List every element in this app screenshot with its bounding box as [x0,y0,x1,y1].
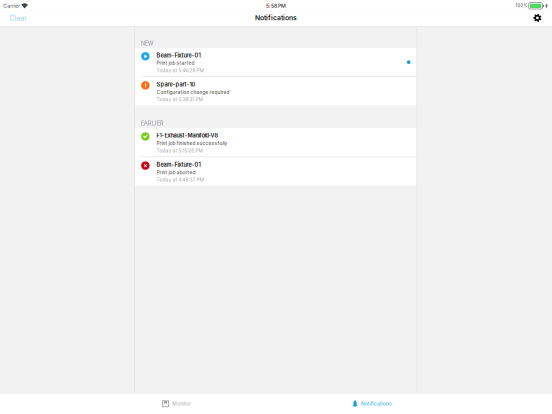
button[interactable]: Clear [0,12,36,26]
staticText: Spare-part-10 [156,81,195,88]
staticText: Beam-Fixture-01 [156,52,200,59]
staticText: Carrier [3,3,20,9]
staticText: Today at 5:46:28 PM [156,68,203,73]
staticText: Today at 5:38:31 PM [156,97,202,102]
staticText: F1-Exhaust-Manifold-V8 [156,132,218,139]
button[interactable]: Settings [523,12,552,26]
staticText: Monitor [172,401,191,407]
button[interactable]: Beam-Fixture-01 [135,157,417,186]
button[interactable]: Monitor [136,394,276,414]
staticText: 5:58 PM [266,3,286,9]
staticText: Notifications [255,14,297,22]
staticText: Print job aborted [156,169,195,175]
staticText: Configuration change required [156,89,229,95]
button[interactable]: Spare-part-10 [135,77,417,105]
staticText: Today at 4:48:37 PM [156,177,203,183]
staticText: Beam-Fixture-01 [156,161,200,168]
staticText: Today at 5:15:05 PM [156,148,202,154]
button[interactable]: Beam-Fixture-01 [135,48,417,76]
staticText: NEW [141,40,154,47]
staticText: Clear [9,14,27,22]
staticText: EARLIER [141,120,164,127]
button[interactable]: Notifications [276,394,416,414]
staticText: Print job started [156,60,194,66]
staticText: 100% [515,3,527,8]
staticText: Notifications [361,401,392,407]
staticText: Print job finished successfully [156,140,227,146]
button[interactable]: F1-Exhaust-Manifold-V8 [135,128,417,157]
